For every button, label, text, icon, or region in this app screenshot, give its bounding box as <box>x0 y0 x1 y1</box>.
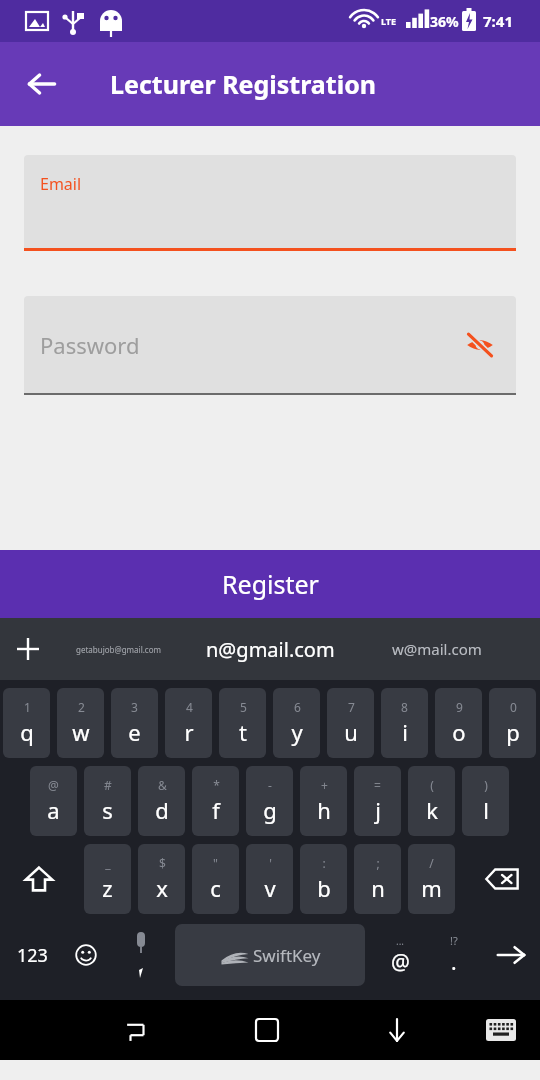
button[interactable]: ; <box>354 844 401 914</box>
staticText: o <box>452 717 466 747</box>
button[interactable]: Enter <box>486 924 536 986</box>
button[interactable]: Voice input and comma <box>116 924 166 986</box>
button[interactable]: Recent apps <box>100 1000 174 1060</box>
button[interactable]: 0 <box>489 688 536 758</box>
button[interactable]: Hide keyboard <box>360 1000 434 1060</box>
button[interactable]: ) <box>462 766 509 836</box>
staticText: * <box>213 777 220 793</box>
staticText: - <box>268 777 272 793</box>
staticText: _ <box>105 855 111 871</box>
staticText: @ <box>391 948 410 977</box>
staticText: " <box>213 855 218 871</box>
staticText: n@gmail.com <box>206 636 335 663</box>
staticText: 2 <box>78 699 85 715</box>
button[interactable]: getabujob@gmail.com <box>63 623 175 675</box>
button[interactable]: ( <box>408 766 455 836</box>
button[interactable]: _ <box>84 844 131 914</box>
staticText: ) <box>484 777 488 793</box>
staticText: ( <box>430 777 434 793</box>
staticText: l <box>483 795 489 825</box>
button[interactable]: !? <box>430 924 478 986</box>
staticText: 7:41 <box>483 11 513 31</box>
button[interactable]: " <box>192 844 239 914</box>
staticText: f <box>212 795 220 825</box>
staticText: + <box>321 777 328 793</box>
staticText: 36% <box>430 12 459 31</box>
button[interactable]: Password <box>24 296 516 393</box>
button[interactable]: = <box>354 766 401 836</box>
button[interactable]: @ <box>30 766 77 836</box>
staticText: 123 <box>17 943 48 968</box>
staticText: 0 <box>510 699 517 715</box>
button[interactable]: 7 <box>327 688 374 758</box>
button[interactable]: $ <box>138 844 185 914</box>
staticText: ' <box>269 855 272 871</box>
staticText: t <box>239 717 247 747</box>
button[interactable]: 3 <box>111 688 158 758</box>
button[interactable]: 9 <box>435 688 482 758</box>
button[interactable]: 123 <box>6 924 58 986</box>
button[interactable]: n@gmail.com <box>195 623 345 675</box>
button[interactable]: 2 <box>57 688 104 758</box>
staticText: s <box>102 795 113 825</box>
staticText: Register <box>222 567 319 601</box>
staticText: c <box>210 873 221 903</box>
staticText: i <box>402 717 408 747</box>
staticText: . <box>451 948 457 977</box>
button[interactable]: Register <box>0 550 540 618</box>
button[interactable]: Shift <box>6 844 72 914</box>
staticText: u <box>344 717 358 747</box>
staticText: x <box>156 873 168 903</box>
button[interactable]: Add clipboard <box>7 628 49 670</box>
staticText: 5 <box>240 699 247 715</box>
staticText: a <box>47 795 60 825</box>
button[interactable]: Email <box>24 155 516 248</box>
button[interactable]: Toggle password visibility <box>458 323 502 367</box>
button[interactable]: 6 <box>273 688 320 758</box>
staticText: 1 <box>24 699 31 715</box>
button[interactable]: + <box>300 766 347 836</box>
staticText: w@mail.com <box>392 639 482 659</box>
staticText: @ <box>48 777 59 793</box>
staticText: & <box>158 777 167 793</box>
staticText: / <box>429 855 434 871</box>
staticText: 7 <box>348 699 355 715</box>
staticText: 9 <box>456 699 463 715</box>
staticText: e <box>128 717 141 747</box>
staticText: $ <box>159 855 166 871</box>
button[interactable]: # <box>84 766 131 836</box>
staticText: getabujob@gmail.com <box>76 644 162 655</box>
button[interactable]: Emoji <box>62 924 110 986</box>
staticText: 3 <box>131 699 138 715</box>
button[interactable]: / <box>408 844 455 914</box>
button[interactable]: Back <box>14 56 70 112</box>
button[interactable]: 8 <box>381 688 428 758</box>
button[interactable]: * <box>192 766 239 836</box>
staticText: Password <box>40 330 140 360</box>
staticText: v <box>264 873 276 903</box>
button[interactable]: 1 <box>3 688 50 758</box>
staticText: j <box>375 795 381 825</box>
button[interactable]: & <box>138 766 185 836</box>
staticText: r <box>184 717 194 747</box>
staticText: 8 <box>401 699 408 715</box>
button[interactable]: Backspace <box>470 844 534 914</box>
staticText: # <box>104 777 112 793</box>
staticText: : <box>322 855 326 871</box>
button[interactable]: 5 <box>219 688 266 758</box>
button[interactable]: ' <box>246 844 293 914</box>
button[interactable]: Space <box>175 924 365 986</box>
button[interactable]: ... <box>376 924 424 986</box>
staticText: m <box>421 873 442 903</box>
staticText: ; <box>376 855 380 871</box>
staticText: Lecturer Registration <box>110 67 377 101</box>
button[interactable]: - <box>246 766 293 836</box>
button[interactable]: 4 <box>165 688 212 758</box>
staticText: ... <box>396 934 405 948</box>
button[interactable]: : <box>300 844 347 914</box>
staticText: 6 <box>294 699 301 715</box>
button[interactable]: Home <box>230 1000 304 1060</box>
button[interactable]: w@mail.com <box>377 623 497 675</box>
button[interactable]: Change keyboard <box>464 1000 538 1060</box>
staticText: LTE <box>381 15 397 27</box>
